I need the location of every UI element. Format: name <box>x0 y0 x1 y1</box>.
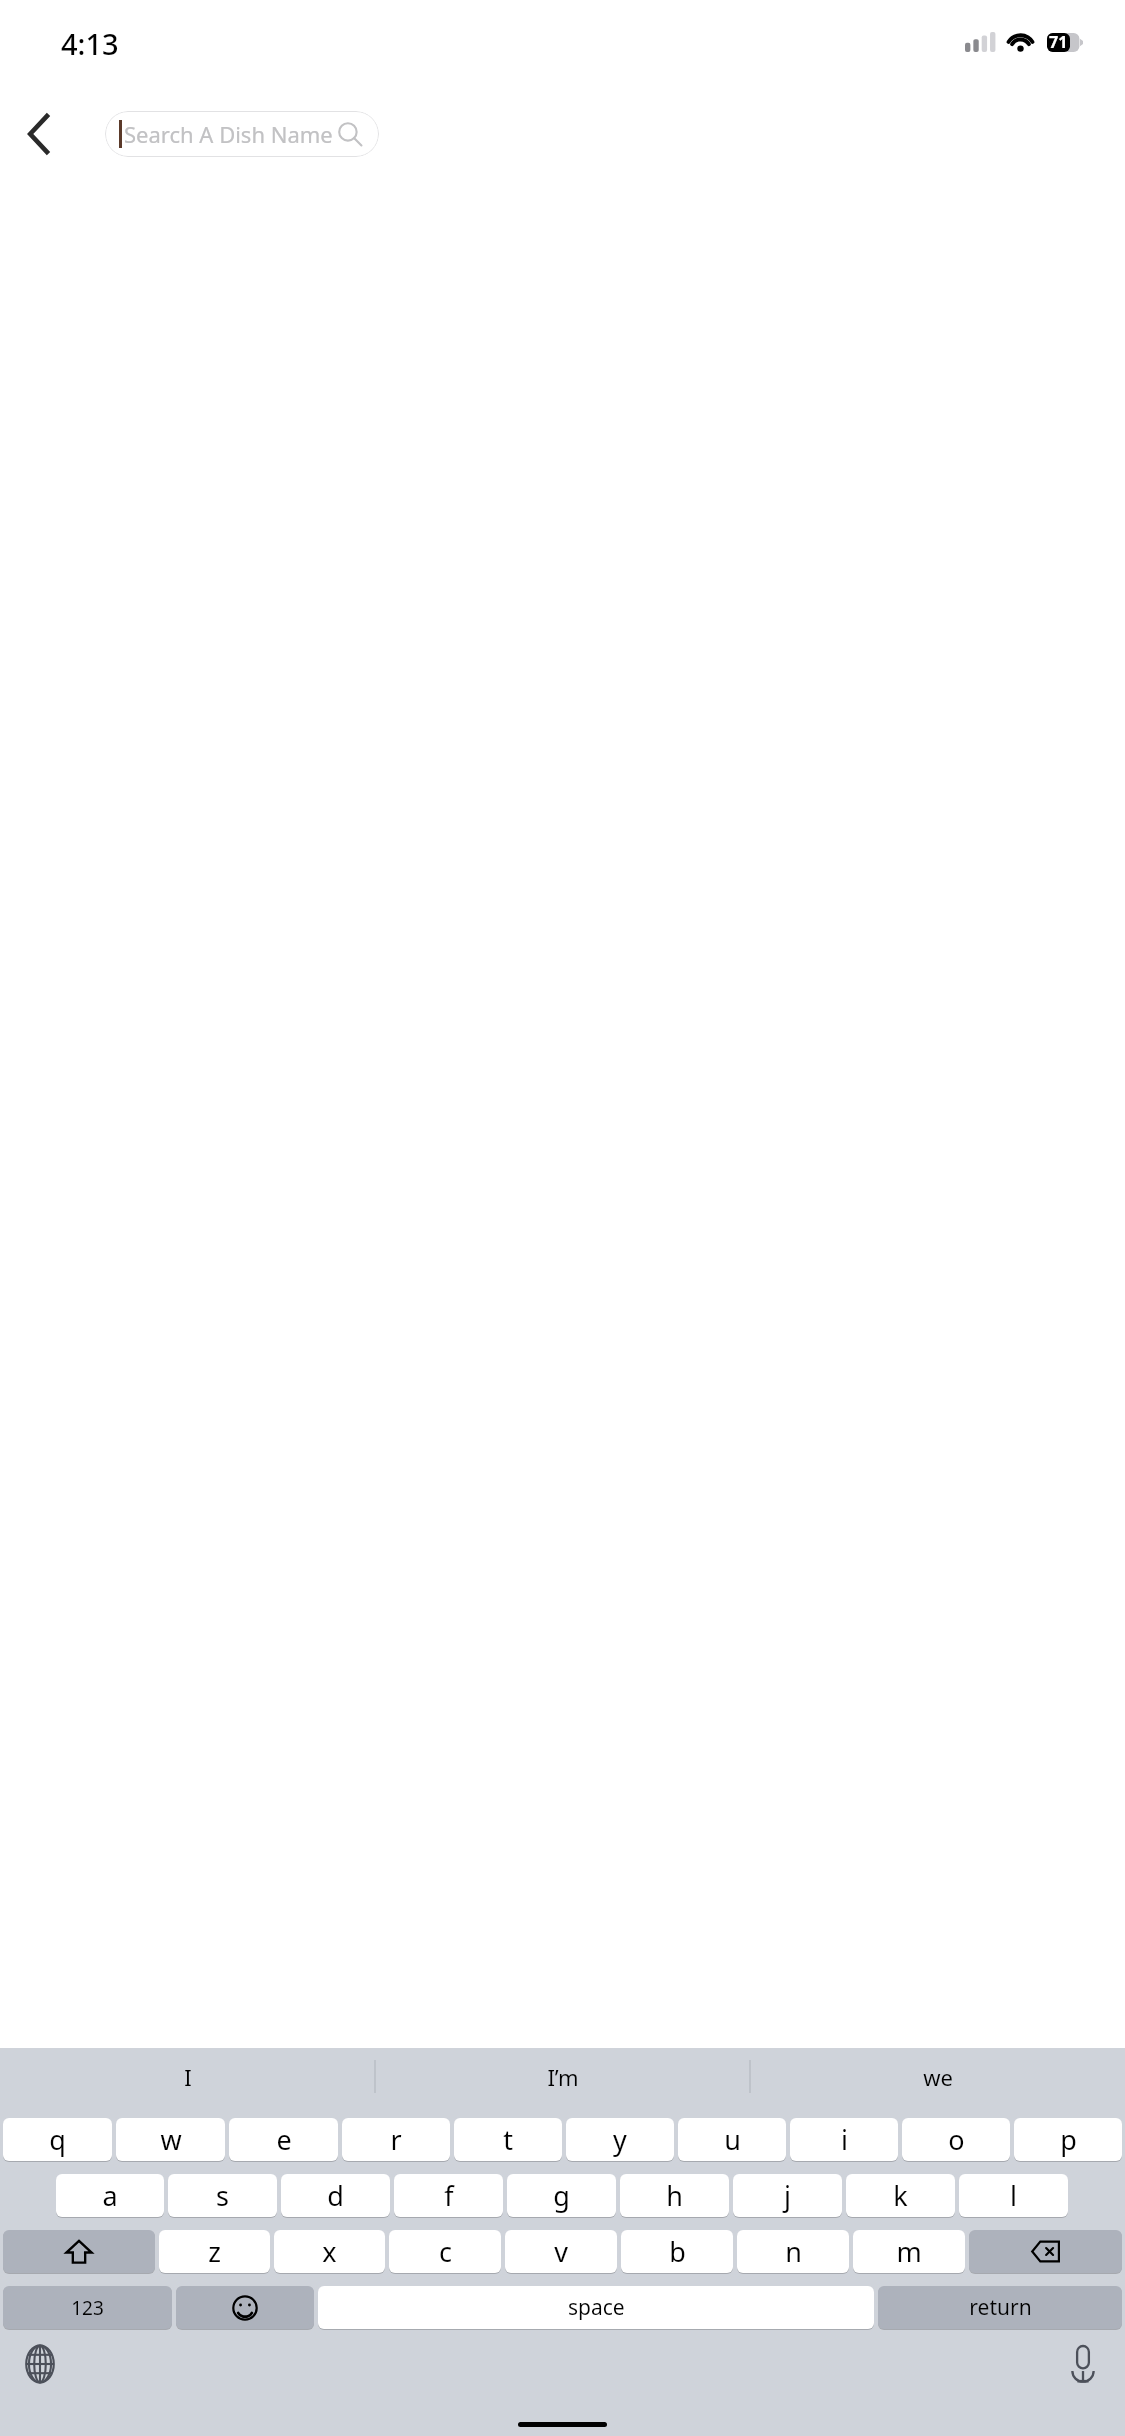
button[interactable]: I’m <box>375 2048 750 2105</box>
button[interactable]: m <box>853 2230 965 2273</box>
staticText: Search A Dish Name <box>124 119 337 149</box>
staticText: b <box>669 2233 686 2270</box>
staticText: g <box>553 2177 570 2214</box>
button[interactable]: v <box>505 2230 617 2273</box>
button[interactable]: s <box>168 2174 277 2217</box>
button[interactable]: z <box>159 2230 270 2273</box>
staticText: x <box>322 2233 337 2270</box>
button[interactable]: o <box>902 2118 1010 2161</box>
button[interactable]: e <box>229 2118 338 2161</box>
staticText: i <box>841 2121 848 2158</box>
staticText: o <box>948 2121 965 2158</box>
button[interactable]: Return <box>878 2286 1122 2329</box>
button[interactable]: a <box>56 2174 164 2217</box>
button[interactable]: Backspace <box>969 2230 1122 2273</box>
button[interactable]: Emoji <box>176 2286 314 2329</box>
button[interactable]: h <box>620 2174 729 2217</box>
staticText: a <box>102 2177 118 2214</box>
staticText: t <box>503 2121 513 2158</box>
staticText: s <box>216 2177 229 2214</box>
button[interactable]: g <box>507 2174 616 2217</box>
button[interactable]: r <box>342 2118 450 2161</box>
staticText: return <box>969 2293 1032 2322</box>
staticText: space <box>568 2293 625 2322</box>
button[interactable]: u <box>678 2118 786 2161</box>
button[interactable]: c <box>389 2230 501 2273</box>
button[interactable]: t <box>454 2118 562 2161</box>
staticText: u <box>724 2121 741 2158</box>
staticText: k <box>893 2177 908 2214</box>
button[interactable]: Numbers <box>3 2286 172 2329</box>
staticText: I <box>184 2062 192 2092</box>
button[interactable]: p <box>1014 2118 1122 2161</box>
staticText: I’m <box>547 2062 579 2092</box>
button[interactable]: x <box>274 2230 385 2273</box>
staticText: e <box>276 2121 292 2158</box>
staticText: r <box>390 2121 402 2158</box>
button[interactable]: y <box>566 2118 674 2161</box>
button[interactable]: j <box>733 2174 842 2217</box>
button[interactable]: b <box>621 2230 733 2273</box>
button[interactable]: l <box>959 2174 1068 2217</box>
staticText: f <box>444 2177 454 2214</box>
staticText: h <box>666 2177 683 2214</box>
staticText: m <box>896 2233 922 2270</box>
button[interactable]: q <box>3 2118 112 2161</box>
staticText: y <box>613 2121 627 2158</box>
button[interactable]: Back <box>8 103 70 165</box>
button[interactable]: space <box>318 2286 874 2329</box>
staticText: we <box>923 2062 953 2092</box>
staticText: c <box>439 2233 452 2270</box>
button[interactable]: Dictation <box>1056 2337 1110 2391</box>
button[interactable]: Search A Dish Name <box>105 111 379 157</box>
button[interactable]: I <box>0 2048 375 2105</box>
staticText: z <box>208 2233 221 2270</box>
button[interactable]: Switch keyboard language <box>13 2337 67 2391</box>
button[interactable]: n <box>737 2230 849 2273</box>
staticText: 123 <box>71 2295 104 2321</box>
staticText: w <box>160 2121 182 2158</box>
staticText: d <box>327 2177 344 2214</box>
staticText: 71 <box>1049 31 1068 53</box>
staticText: q <box>49 2121 66 2158</box>
button[interactable]: f <box>394 2174 503 2217</box>
staticText: 4:13 <box>61 24 119 63</box>
staticText: n <box>785 2233 802 2270</box>
button[interactable]: i <box>790 2118 898 2161</box>
button[interactable]: k <box>846 2174 955 2217</box>
button[interactable]: we <box>750 2048 1125 2105</box>
staticText: p <box>1060 2121 1077 2158</box>
staticText: j <box>784 2177 791 2214</box>
button[interactable]: Shift <box>3 2230 155 2273</box>
staticText: v <box>554 2233 568 2270</box>
button[interactable]: w <box>116 2118 225 2161</box>
button[interactable]: d <box>281 2174 390 2217</box>
staticText: l <box>1010 2177 1017 2214</box>
